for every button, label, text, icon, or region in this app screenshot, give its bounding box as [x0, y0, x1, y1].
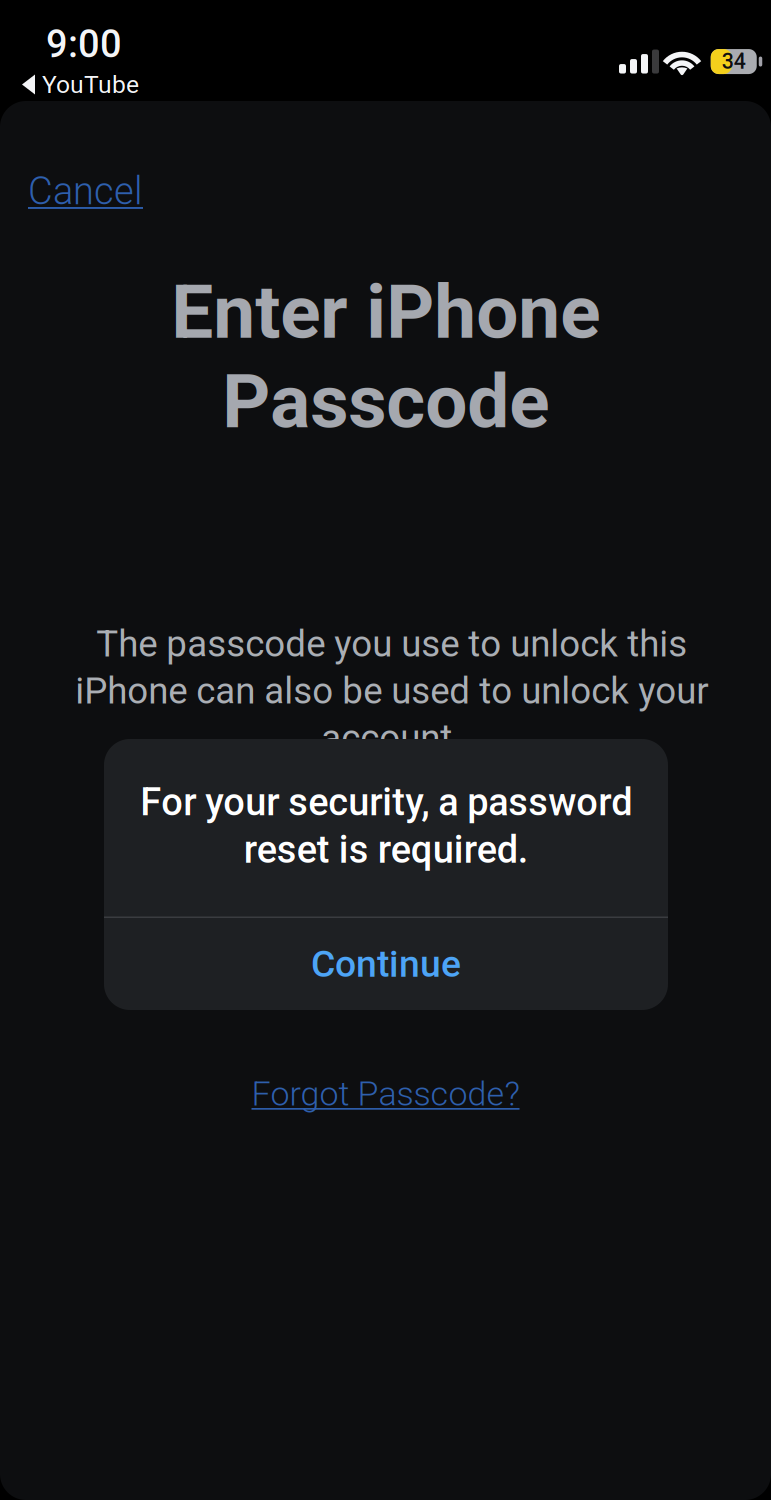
staticText: Forgot Passcode?: [251, 1074, 519, 1114]
staticText: 34: [722, 49, 746, 74]
staticText: Continue: [311, 942, 461, 986]
staticText: YouTube: [42, 70, 139, 99]
button[interactable]: Back to YouTube: [0, 66, 139, 103]
staticText: Enter iPhone Passcode: [171, 268, 600, 445]
staticText: The passcode you use to unlock this iPho…: [75, 622, 708, 759]
button[interactable]: Cancel: [0, 155, 171, 227]
staticText: 9:00: [46, 22, 122, 66]
staticText: Cancel: [28, 169, 143, 213]
staticText: For your security, a password reset is r…: [140, 780, 632, 872]
button[interactable]: Forgot Passcode?: [231, 1062, 539, 1126]
button[interactable]: Continue: [104, 918, 668, 1010]
